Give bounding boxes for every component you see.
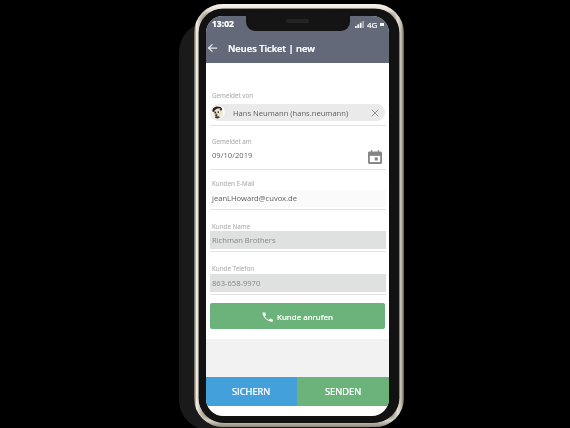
staticText: Richman Brothers — [212, 235, 276, 245]
staticText: Neues Ticket | new — [228, 42, 315, 55]
staticText: Kunde anrufen — [277, 311, 333, 322]
staticText: 863-658-9970 — [212, 278, 261, 288]
staticText: Kunde Telefon — [212, 264, 255, 273]
staticText: Kunde Name — [212, 222, 251, 231]
button[interactable]: Hans Neumann (hans.neumann) — [210, 104, 385, 121]
staticText: Hans Neumann (hans.neumann) — [233, 108, 349, 118]
button[interactable]: Back — [206, 37, 223, 58]
staticText: jeanLHoward@cuvox.de — [212, 193, 298, 203]
staticText: Gemeldet am — [212, 137, 252, 146]
button[interactable]: Pick date — [368, 150, 382, 164]
staticText: Kunden E-Mail — [212, 179, 255, 188]
staticText: SICHERN — [232, 385, 271, 398]
button[interactable]: SENDEN — [297, 377, 389, 406]
staticText: 09/10/2019 — [212, 150, 253, 160]
staticText: 4G — [367, 19, 378, 30]
button[interactable]: SICHERN — [206, 377, 297, 406]
button[interactable]: Kunde anrufen — [210, 303, 385, 329]
staticText: Gemeldet von — [212, 91, 254, 100]
staticText: 13:02 — [212, 18, 234, 30]
staticText: SENDEN — [325, 385, 362, 398]
